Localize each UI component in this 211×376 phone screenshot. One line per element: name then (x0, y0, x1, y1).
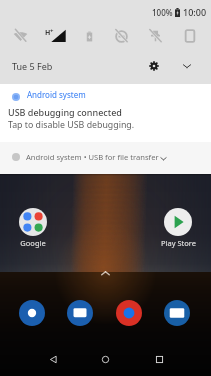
button[interactable]: Chrome (113, 297, 145, 329)
staticText: Android system (27, 89, 86, 100)
button[interactable]: Expand (177, 56, 197, 76)
button[interactable]: Mobile data H+ (42, 26, 76, 46)
button[interactable]: Google (9, 208, 57, 248)
staticText: 10:00 (183, 6, 207, 18)
button[interactable]: Camera (161, 297, 193, 329)
button[interactable]: Messages (64, 297, 96, 329)
staticText: Android system • USB for file transfer (26, 152, 159, 162)
button[interactable]: Phone (16, 297, 48, 329)
staticText: Play Store (161, 238, 196, 248)
button[interactable]: Battery saver (77, 24, 101, 48)
button[interactable]: Play Store (154, 208, 202, 248)
button[interactable]: Android system (0, 84, 211, 142)
button[interactable]: Home (90, 344, 120, 374)
button[interactable]: Recents (144, 344, 174, 374)
button[interactable]: Android system • USB for file transfer (0, 142, 211, 174)
button[interactable]: Back (38, 344, 68, 374)
staticText: USB debugging connected (8, 106, 122, 118)
staticText: 100% (152, 7, 173, 18)
button[interactable]: Wi-Fi off (8, 24, 32, 48)
staticText: Tap to disable USB debugging. (8, 119, 135, 131)
button[interactable]: Do not disturb (109, 24, 133, 48)
staticText: Tue 5 Feb (12, 60, 53, 72)
staticText: + (50, 27, 54, 35)
button[interactable]: Flashlight off (143, 24, 167, 48)
button[interactable]: Auto rotate (178, 24, 202, 48)
staticText: H (45, 28, 51, 38)
staticText: Google (20, 238, 46, 248)
button[interactable]: Settings (144, 56, 164, 76)
